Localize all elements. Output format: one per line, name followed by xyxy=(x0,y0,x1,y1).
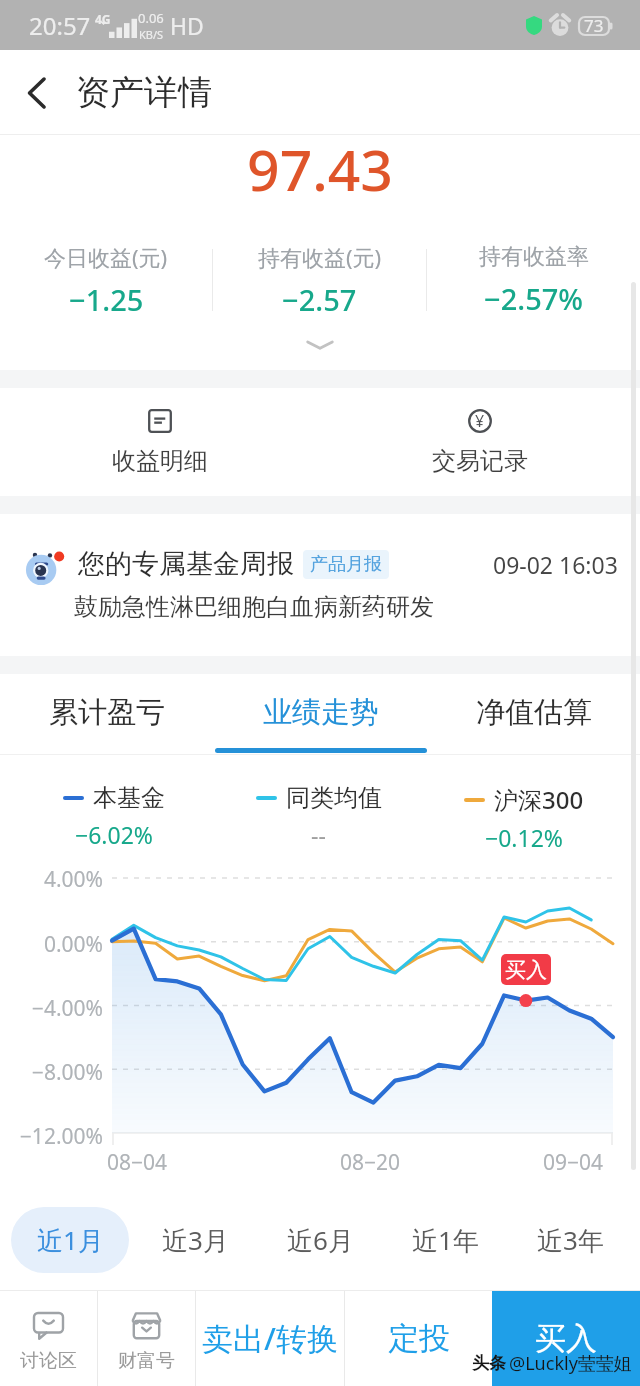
button[interactable]: 累计盈亏 xyxy=(0,674,214,755)
staticText: 业绩走势 xyxy=(263,694,379,731)
button[interactable]: ¥ xyxy=(320,388,640,496)
staticText: 今日收益(元) xyxy=(44,242,168,272)
staticText: 产品月报 xyxy=(310,553,382,576)
button[interactable]: Back xyxy=(0,50,74,135)
staticText: 近1年 xyxy=(412,1222,479,1258)
button[interactable]: 卖出/转换 xyxy=(196,1290,344,1386)
staticText: 买入 xyxy=(535,1319,597,1358)
staticText: 头条 xyxy=(472,1353,506,1374)
staticText: 持有收益(元) xyxy=(258,242,382,272)
staticText: 08−20 xyxy=(340,1148,401,1177)
button[interactable]: 财富号 xyxy=(98,1290,195,1386)
button[interactable]: 您的专属基金周报 xyxy=(0,514,640,656)
button[interactable]: 近3年 xyxy=(515,1207,625,1273)
staticText: 近3月 xyxy=(162,1222,229,1258)
staticText: @Luckly莹莹姐 xyxy=(509,1351,632,1376)
button[interactable]: Expand xyxy=(290,325,350,365)
button[interactable]: 买入 xyxy=(501,954,551,985)
button[interactable]: 讨论区 xyxy=(0,1290,97,1386)
staticText: 同类均值 xyxy=(286,783,382,813)
staticText: 近1月 xyxy=(37,1222,104,1258)
staticText: 鼓励急性淋巴细胞白血病新药研发 xyxy=(74,592,434,622)
staticText: −1.25 xyxy=(69,280,144,319)
staticText: 持有收益率 xyxy=(479,243,589,271)
staticText: −0.12% xyxy=(485,822,563,853)
button[interactable]: 业绩走势 xyxy=(214,674,427,755)
staticText: −6.02% xyxy=(75,819,153,850)
button[interactable]: 买入 xyxy=(492,1290,640,1386)
staticText: 讨论区 xyxy=(20,1349,77,1373)
staticText: 73 xyxy=(584,14,604,37)
staticText: 4.00% xyxy=(0,865,103,894)
button[interactable]: 近1年 xyxy=(390,1207,500,1273)
staticText: −4.00% xyxy=(0,994,103,1023)
staticText: 您的专属基金周报 xyxy=(78,547,294,581)
button[interactable]: 定投 xyxy=(345,1290,492,1386)
staticText: −12.00% xyxy=(0,1122,103,1151)
staticText: 沪深300 xyxy=(494,783,584,816)
staticText: 净值估算 xyxy=(476,694,592,731)
staticText: 近6月 xyxy=(287,1222,354,1258)
staticText: -- xyxy=(311,819,326,850)
button[interactable]: 净值估算 xyxy=(427,674,640,755)
staticText: 本基金 xyxy=(93,783,165,813)
staticText: 近3年 xyxy=(537,1222,604,1258)
staticText: 买入 xyxy=(505,957,547,983)
staticText: 09−04 xyxy=(543,1148,604,1177)
staticText: 08−04 xyxy=(107,1148,168,1177)
button[interactable]: 近3月 xyxy=(140,1207,250,1273)
staticText: 资产详情 xyxy=(76,71,212,114)
staticText: ¥ xyxy=(475,410,485,432)
staticText: 财富号 xyxy=(118,1349,175,1373)
staticText: HD xyxy=(170,10,204,41)
staticText: 收益明细 xyxy=(112,446,208,476)
staticText: 20:57 xyxy=(29,9,91,42)
staticText: 09-02 16:03 xyxy=(493,549,618,580)
staticText: −2.57% xyxy=(484,279,584,318)
button[interactable]: 收益明细 xyxy=(0,388,320,496)
staticText: 0.00% xyxy=(0,930,103,959)
staticText: 累计盈亏 xyxy=(49,694,165,731)
staticText: 定投 xyxy=(388,1319,450,1358)
staticText: 卖出/转换 xyxy=(202,1317,338,1359)
button[interactable]: 近6月 xyxy=(265,1207,375,1273)
staticText: −2.57 xyxy=(282,280,357,319)
button[interactable]: 近1月 xyxy=(11,1207,129,1273)
staticText: 交易记录 xyxy=(432,446,528,476)
staticText: 4G xyxy=(95,11,111,27)
staticText: 0.06 xyxy=(138,9,164,27)
staticText: 97.43 xyxy=(0,130,640,208)
staticText: −8.00% xyxy=(0,1058,103,1087)
staticText: KB/S xyxy=(139,27,164,42)
